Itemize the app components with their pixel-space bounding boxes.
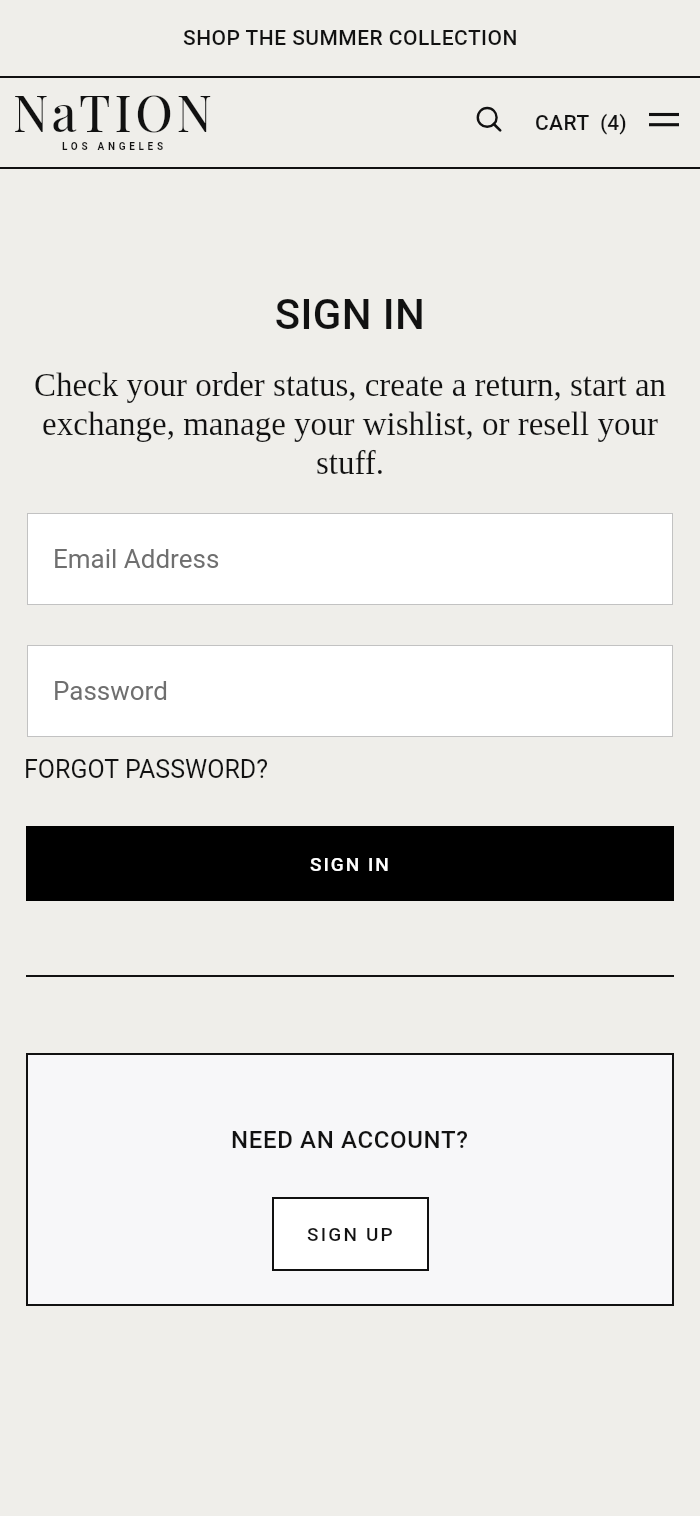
- staticText: NEED AN ACCOUNT?: [231, 1126, 469, 1154]
- staticText: SIGN IN: [310, 853, 391, 875]
- staticText: Password: [53, 676, 168, 706]
- staticText: NaTION: [13, 78, 216, 145]
- button[interactable]: CART: [527, 101, 635, 146]
- staticText: SIGN UP: [307, 1223, 395, 1245]
- button[interactable]: NaTION: [13, 78, 216, 157]
- staticText: Email Address: [53, 544, 220, 574]
- button[interactable]: Search: [465, 96, 517, 148]
- staticText: Check your order status, create a return…: [20, 367, 680, 481]
- staticText: FORGOT PASSWORD?: [24, 755, 269, 784]
- button[interactable]: SHOP THE SUMMER COLLECTION: [0, 0, 700, 76]
- button[interactable]: Password: [27, 645, 673, 737]
- button[interactable]: Email Address: [27, 513, 673, 605]
- staticText: SIGN IN: [0, 290, 700, 339]
- button[interactable]: FORGOT PASSWORD?: [24, 755, 269, 784]
- button[interactable]: Menu: [638, 88, 690, 140]
- staticText: LOS ANGELES: [62, 141, 167, 153]
- staticText: SHOP THE SUMMER COLLECTION: [183, 26, 518, 51]
- button[interactable]: SIGN IN: [26, 826, 674, 901]
- staticText: (4): [600, 111, 627, 136]
- staticText: CART: [535, 111, 590, 136]
- button[interactable]: SIGN UP: [272, 1197, 429, 1271]
